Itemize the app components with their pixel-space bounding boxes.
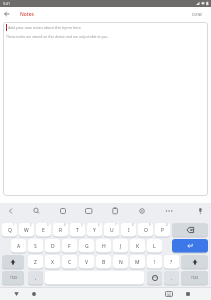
staticText: I xyxy=(128,227,130,234)
button[interactable]: E xyxy=(36,223,51,237)
staticText: , xyxy=(35,275,37,282)
staticText: X xyxy=(51,259,54,266)
button[interactable]: O xyxy=(138,223,153,237)
button[interactable]: W xyxy=(19,223,34,237)
staticText: R xyxy=(59,227,63,234)
staticText: 4 xyxy=(64,223,66,227)
button[interactable]: K xyxy=(130,239,145,253)
staticText: 7 xyxy=(115,223,117,227)
staticText: Y xyxy=(93,227,96,234)
button[interactable]: X xyxy=(45,255,60,269)
button[interactable]: N xyxy=(113,255,128,269)
button[interactable]: I xyxy=(121,223,136,237)
button[interactable]: V xyxy=(79,255,94,269)
button[interactable]: C xyxy=(62,255,77,269)
button[interactable] xyxy=(172,239,208,253)
button[interactable]: R xyxy=(53,223,68,237)
button[interactable]: Add your own notes about this hymn here xyxy=(3,22,208,196)
staticText: 9 xyxy=(149,223,151,227)
button[interactable]: Z xyxy=(28,255,43,269)
staticText: Add your own notes about this hymn here xyxy=(8,25,81,30)
button[interactable]: Y xyxy=(87,223,102,237)
button[interactable]: P xyxy=(155,223,170,237)
staticText: E xyxy=(42,227,45,234)
staticText: V xyxy=(85,259,89,266)
staticText: K xyxy=(136,243,140,250)
staticText: ! xyxy=(154,259,156,266)
button[interactable]: A xyxy=(11,239,26,253)
staticText: Q xyxy=(8,227,12,234)
staticText: DONE xyxy=(192,12,203,17)
staticText: M xyxy=(135,259,140,266)
button[interactable]: DONE xyxy=(192,12,203,17)
staticText: O xyxy=(144,227,148,234)
button[interactable]: . xyxy=(164,271,179,285)
button[interactable]: ?123 xyxy=(181,271,208,285)
button[interactable]: D xyxy=(45,239,60,253)
staticText: A xyxy=(17,243,21,250)
button[interactable]: M xyxy=(130,255,145,269)
staticText: ?123 xyxy=(10,276,17,280)
staticText: S xyxy=(34,243,37,250)
button[interactable]: , xyxy=(28,271,43,285)
button[interactable]: T xyxy=(70,223,85,237)
staticText: P xyxy=(161,227,165,234)
button[interactable]: S xyxy=(28,239,43,253)
staticText: Z xyxy=(34,259,37,266)
staticText: D xyxy=(51,243,55,250)
staticText: ?123 xyxy=(191,276,198,280)
button[interactable]: H xyxy=(96,239,111,253)
button[interactable] xyxy=(147,271,162,285)
staticText: G xyxy=(85,243,89,250)
button[interactable]: ? xyxy=(164,255,179,269)
staticText: C xyxy=(68,259,72,266)
button[interactable]: L xyxy=(147,239,162,253)
staticText: F xyxy=(68,243,71,250)
staticText: 3 xyxy=(47,223,49,227)
staticText: 1 xyxy=(13,223,15,227)
staticText: W xyxy=(24,227,29,234)
staticText: 2 xyxy=(30,223,32,227)
button[interactable]: B xyxy=(96,255,111,269)
staticText: Notes xyxy=(20,11,34,18)
staticText: These notes are stored on this device an… xyxy=(6,34,109,39)
button[interactable]: ! xyxy=(147,255,162,269)
staticText: 9:41 xyxy=(3,1,11,6)
button[interactable] xyxy=(45,271,144,285)
button[interactable]: ?123 xyxy=(2,271,24,285)
staticText: U xyxy=(110,227,114,234)
staticText: 5 xyxy=(81,223,83,227)
staticText: . xyxy=(171,275,173,282)
button[interactable]: F xyxy=(62,239,77,253)
staticText: L xyxy=(153,243,156,250)
button[interactable]: G xyxy=(79,239,94,253)
staticText: 8 xyxy=(132,223,134,227)
button[interactable] xyxy=(172,223,208,237)
button[interactable] xyxy=(181,255,208,269)
staticText: J xyxy=(120,243,122,250)
staticText: N xyxy=(119,259,123,266)
button[interactable] xyxy=(0,7,14,21)
staticText: H xyxy=(102,243,106,250)
button[interactable]: J xyxy=(113,239,128,253)
staticText: 0 xyxy=(166,223,168,227)
button[interactable]: Q xyxy=(2,223,17,237)
staticText: T xyxy=(76,227,79,234)
staticText: B xyxy=(102,259,106,266)
staticText: 6 xyxy=(98,223,100,227)
staticText: ? xyxy=(170,259,173,266)
button[interactable] xyxy=(2,255,24,269)
button[interactable]: U xyxy=(104,223,119,237)
